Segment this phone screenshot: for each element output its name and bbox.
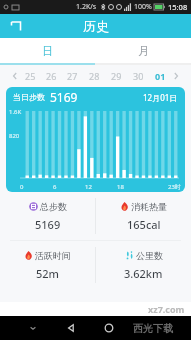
staticText: 25 <box>25 70 36 82</box>
button[interactable]: 公里数 <box>96 241 191 289</box>
staticText: 100% <box>134 2 152 12</box>
staticText: 12 <box>85 183 92 191</box>
staticText: 0 <box>20 183 24 191</box>
staticText: 公里数 <box>136 250 163 261</box>
staticText: 消耗热量 <box>131 201 167 212</box>
staticText: 3.62km <box>124 266 163 281</box>
staticText: 历史 <box>83 18 109 34</box>
staticText: 月 <box>138 44 149 58</box>
staticText: 30 <box>133 70 144 82</box>
button[interactable]: Back <box>52 316 90 340</box>
button[interactable]: Back <box>8 18 24 34</box>
staticText: 52m <box>36 266 60 281</box>
button[interactable]: 当日步数 <box>6 87 185 192</box>
button[interactable]: Previous <box>10 71 20 81</box>
button[interactable]: Hide keyboard <box>14 316 52 340</box>
staticText: 01 <box>155 70 166 82</box>
staticText: 当日步数 <box>13 92 45 102</box>
button[interactable]: 月 <box>95 38 191 63</box>
staticText: 12月01日 <box>143 92 178 103</box>
staticText: 日 <box>42 44 53 58</box>
button[interactable]: Next <box>171 71 181 81</box>
button[interactable]: 28 <box>83 65 105 87</box>
staticText: 活跃时间 <box>35 250 71 261</box>
button[interactable]: 29 <box>105 65 127 87</box>
staticText: 29 <box>111 70 122 82</box>
staticText: 5169 <box>50 89 78 105</box>
staticText: 15:08 <box>168 2 188 12</box>
staticText: 23时 <box>168 183 181 191</box>
button[interactable]: 活跃时间 <box>0 241 95 289</box>
staticText: 总步数 <box>40 201 67 212</box>
staticText: 820 <box>9 132 20 140</box>
staticText: 1.6K <box>9 108 22 116</box>
staticText: 18 <box>117 183 124 191</box>
button[interactable]: 日 <box>0 38 95 63</box>
staticText: 28 <box>89 70 100 82</box>
button[interactable]: Home <box>90 316 128 340</box>
staticText: 5169 <box>35 217 61 232</box>
button[interactable]: 27 <box>62 65 83 87</box>
staticText: 27 <box>67 70 78 82</box>
staticText: 西光下载 <box>133 322 173 335</box>
button[interactable]: 消耗热量 <box>96 192 191 240</box>
button[interactable]: 01 <box>149 65 171 87</box>
button[interactable]: 26 <box>41 65 62 87</box>
staticText: 6 <box>53 183 57 191</box>
staticText: 26 <box>46 70 57 82</box>
staticText: 165cal <box>127 217 161 232</box>
button[interactable]: 25 <box>20 65 41 87</box>
button[interactable]: 30 <box>127 65 149 87</box>
staticText: xz7.com <box>148 303 185 315</box>
staticText: 1.2K/s <box>76 2 97 12</box>
button[interactable]: 总步数 <box>0 192 95 240</box>
